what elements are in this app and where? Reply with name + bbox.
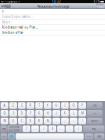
button[interactable]: ? [23,126,30,132]
button[interactable]: K [61,110,69,116]
button[interactable]: W [1,118,8,124]
staticText: N [47,119,49,123]
staticText: : [73,119,74,123]
staticText: Enter [91,119,98,123]
staticText: , [56,119,57,123]
staticText: Objet : [2,20,12,24]
staticText: ' [69,127,70,130]
button[interactable]: N [44,118,51,124]
staticText: A [3,104,5,107]
staticText: À : [2,10,6,13]
staticText: J [56,111,57,115]
button[interactable]: 🌐 [8,133,15,140]
button[interactable]: ↩ [87,110,103,116]
button[interactable]: Maj [83,126,104,132]
staticText: Q [3,111,5,115]
button[interactable]: Enter [87,118,103,124]
button[interactable]: Y [44,102,51,109]
button[interactable]: C [18,118,26,124]
button[interactable]: Annuler [1,4,11,8]
staticText: Direction a Plan [2,31,24,34]
button[interactable]: Donnez un titre [7,126,22,132]
button[interactable]: § [48,126,56,132]
staticText: .?123 [2,136,6,137]
staticText: Annuler [1,3,10,10]
button[interactable]: J [52,110,60,116]
button[interactable]: F [27,110,34,116]
staticText: R [29,104,31,107]
button[interactable]: / [40,126,47,132]
staticText: P [81,104,83,107]
staticText: - [60,127,61,130]
staticText: Nouveau message [37,3,69,9]
button[interactable]: R [27,102,34,109]
staticText: E [21,104,22,107]
staticText: H [47,111,49,115]
button[interactable]: ' [66,126,73,132]
staticText: ↩ [94,112,96,115]
button[interactable]: Q [1,110,8,116]
button[interactable]: M [78,110,86,116]
staticText: ) [78,127,79,130]
button[interactable]: ) [74,126,82,132]
staticText: ⌫ [93,104,97,107]
button[interactable]: A [1,102,8,109]
button[interactable]: E [18,102,26,109]
staticText: G [38,111,40,115]
button[interactable]: H [44,110,51,116]
staticText: 🌐 [10,135,13,138]
button[interactable]: D [18,110,26,116]
staticText: U [55,104,57,107]
staticText: 87% [94,0,100,3]
button[interactable]: S [9,110,17,116]
staticText: / [43,127,44,130]
button[interactable]: U [52,102,60,109]
button[interactable]: B [35,118,43,124]
button[interactable]: Maj [1,126,7,132]
staticText: 14:32 [52,0,61,3]
staticText: Maj [2,127,6,130]
staticText: W [3,119,5,123]
staticText: I [64,104,65,107]
button[interactable]: ⌫ [87,102,103,109]
staticText: ? [26,127,27,130]
staticText: T [38,104,39,107]
staticText: X [12,119,14,123]
button[interactable]: I [61,102,69,109]
staticText: L [73,111,74,115]
staticText: Telecharger mail ou Plan... [2,26,39,29]
button[interactable]: Z [9,102,17,109]
staticText: Y [47,104,49,107]
button[interactable]: P [78,102,86,109]
button[interactable]: O [70,102,77,109]
staticText: Maj [92,127,96,130]
button[interactable]: ! [78,118,86,124]
button[interactable]: T [35,102,43,109]
staticText: Envoyer [96,3,104,10]
button[interactable]: - [57,126,65,132]
staticText: ; [64,119,65,123]
staticText: ⌨ [97,135,101,138]
button[interactable]: .?123 [85,133,93,140]
button[interactable]: ; [61,118,69,124]
button[interactable]: X [9,118,17,124]
staticText: ! [82,119,83,123]
button[interactable]: . [31,126,39,132]
button[interactable]: , [52,118,60,124]
button[interactable]: L [70,110,77,116]
button[interactable]: .?123 [1,133,7,140]
button[interactable]: G [35,110,43,116]
button[interactable]: V [27,118,34,124]
button[interactable]: ⌨ [94,133,104,140]
staticText: Z [12,104,14,107]
button[interactable]: space [16,133,84,140]
staticText: F [30,111,31,115]
staticText: M [81,111,83,115]
staticText: K [64,111,66,115]
staticText: Donnez un titre [9,125,20,132]
staticText: V [29,119,31,123]
button[interactable]: : [70,118,77,124]
button[interactable]: Envoyer [96,4,104,8]
staticText: S [13,111,14,115]
staticText: C [21,119,23,123]
